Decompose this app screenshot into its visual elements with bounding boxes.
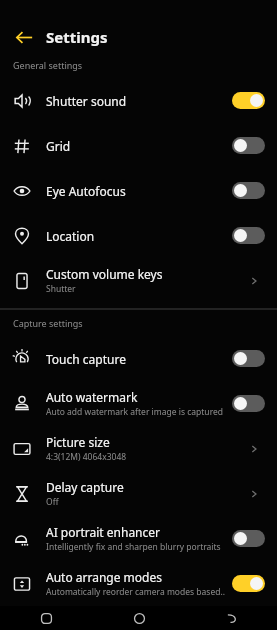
- staticText: Off: [46, 496, 59, 508]
- button[interactable]: Home: [93, 606, 185, 630]
- button[interactable]: Recents: [0, 606, 93, 630]
- staticText: Touch capture: [46, 351, 126, 367]
- button[interactable]: Auto watermark: [0, 381, 277, 426]
- button[interactable]: Delay capture: [0, 471, 277, 516]
- staticText: Auto watermark: [46, 389, 138, 405]
- staticText: 4:3(12M) 4064x3048: [46, 451, 127, 463]
- staticText: Eye Autofocus: [46, 183, 126, 199]
- button[interactable]: Eye Autofocus: [0, 168, 277, 213]
- button[interactable]: [232, 575, 265, 592]
- staticText: Picture size: [46, 434, 110, 450]
- button[interactable]: Custom volume keys: [0, 258, 277, 303]
- staticText: Auto add watermark after image is captur…: [46, 406, 223, 418]
- staticText: Automatically reorder camera modes based…: [46, 586, 225, 598]
- staticText: Custom volume keys: [46, 266, 163, 282]
- staticText: Shutter sound: [46, 93, 127, 109]
- staticText: Auto arrange modes: [46, 569, 162, 585]
- button[interactable]: Picture size: [0, 426, 277, 471]
- staticText: Settings: [46, 27, 108, 47]
- button[interactable]: [232, 530, 265, 547]
- button[interactable]: [232, 137, 265, 154]
- staticText: Delay capture: [46, 479, 124, 495]
- button[interactable]: AI portrait enhancer: [0, 516, 277, 561]
- button[interactable]: Auto arrange modes: [0, 561, 277, 606]
- button[interactable]: [232, 350, 265, 367]
- button[interactable]: [232, 182, 265, 199]
- button[interactable]: Shutter sound: [0, 78, 277, 123]
- staticText: General settings: [13, 59, 83, 71]
- staticText: Shutter: [46, 283, 76, 295]
- button[interactable]: [232, 395, 265, 412]
- button[interactable]: [232, 227, 265, 244]
- staticText: Grid: [46, 138, 71, 154]
- button[interactable]: Location: [0, 213, 277, 258]
- button[interactable]: Back: [185, 606, 277, 630]
- staticText: Intelligently fix and sharpen blurry por…: [46, 541, 221, 553]
- button[interactable]: Grid: [0, 123, 277, 168]
- button[interactable]: Touch capture: [0, 336, 277, 381]
- staticText: Location: [46, 228, 95, 244]
- staticText: AI portrait enhancer: [46, 524, 161, 540]
- staticText: Capture settings: [13, 317, 83, 329]
- button[interactable]: Back: [13, 26, 35, 48]
- button[interactable]: [232, 92, 265, 109]
